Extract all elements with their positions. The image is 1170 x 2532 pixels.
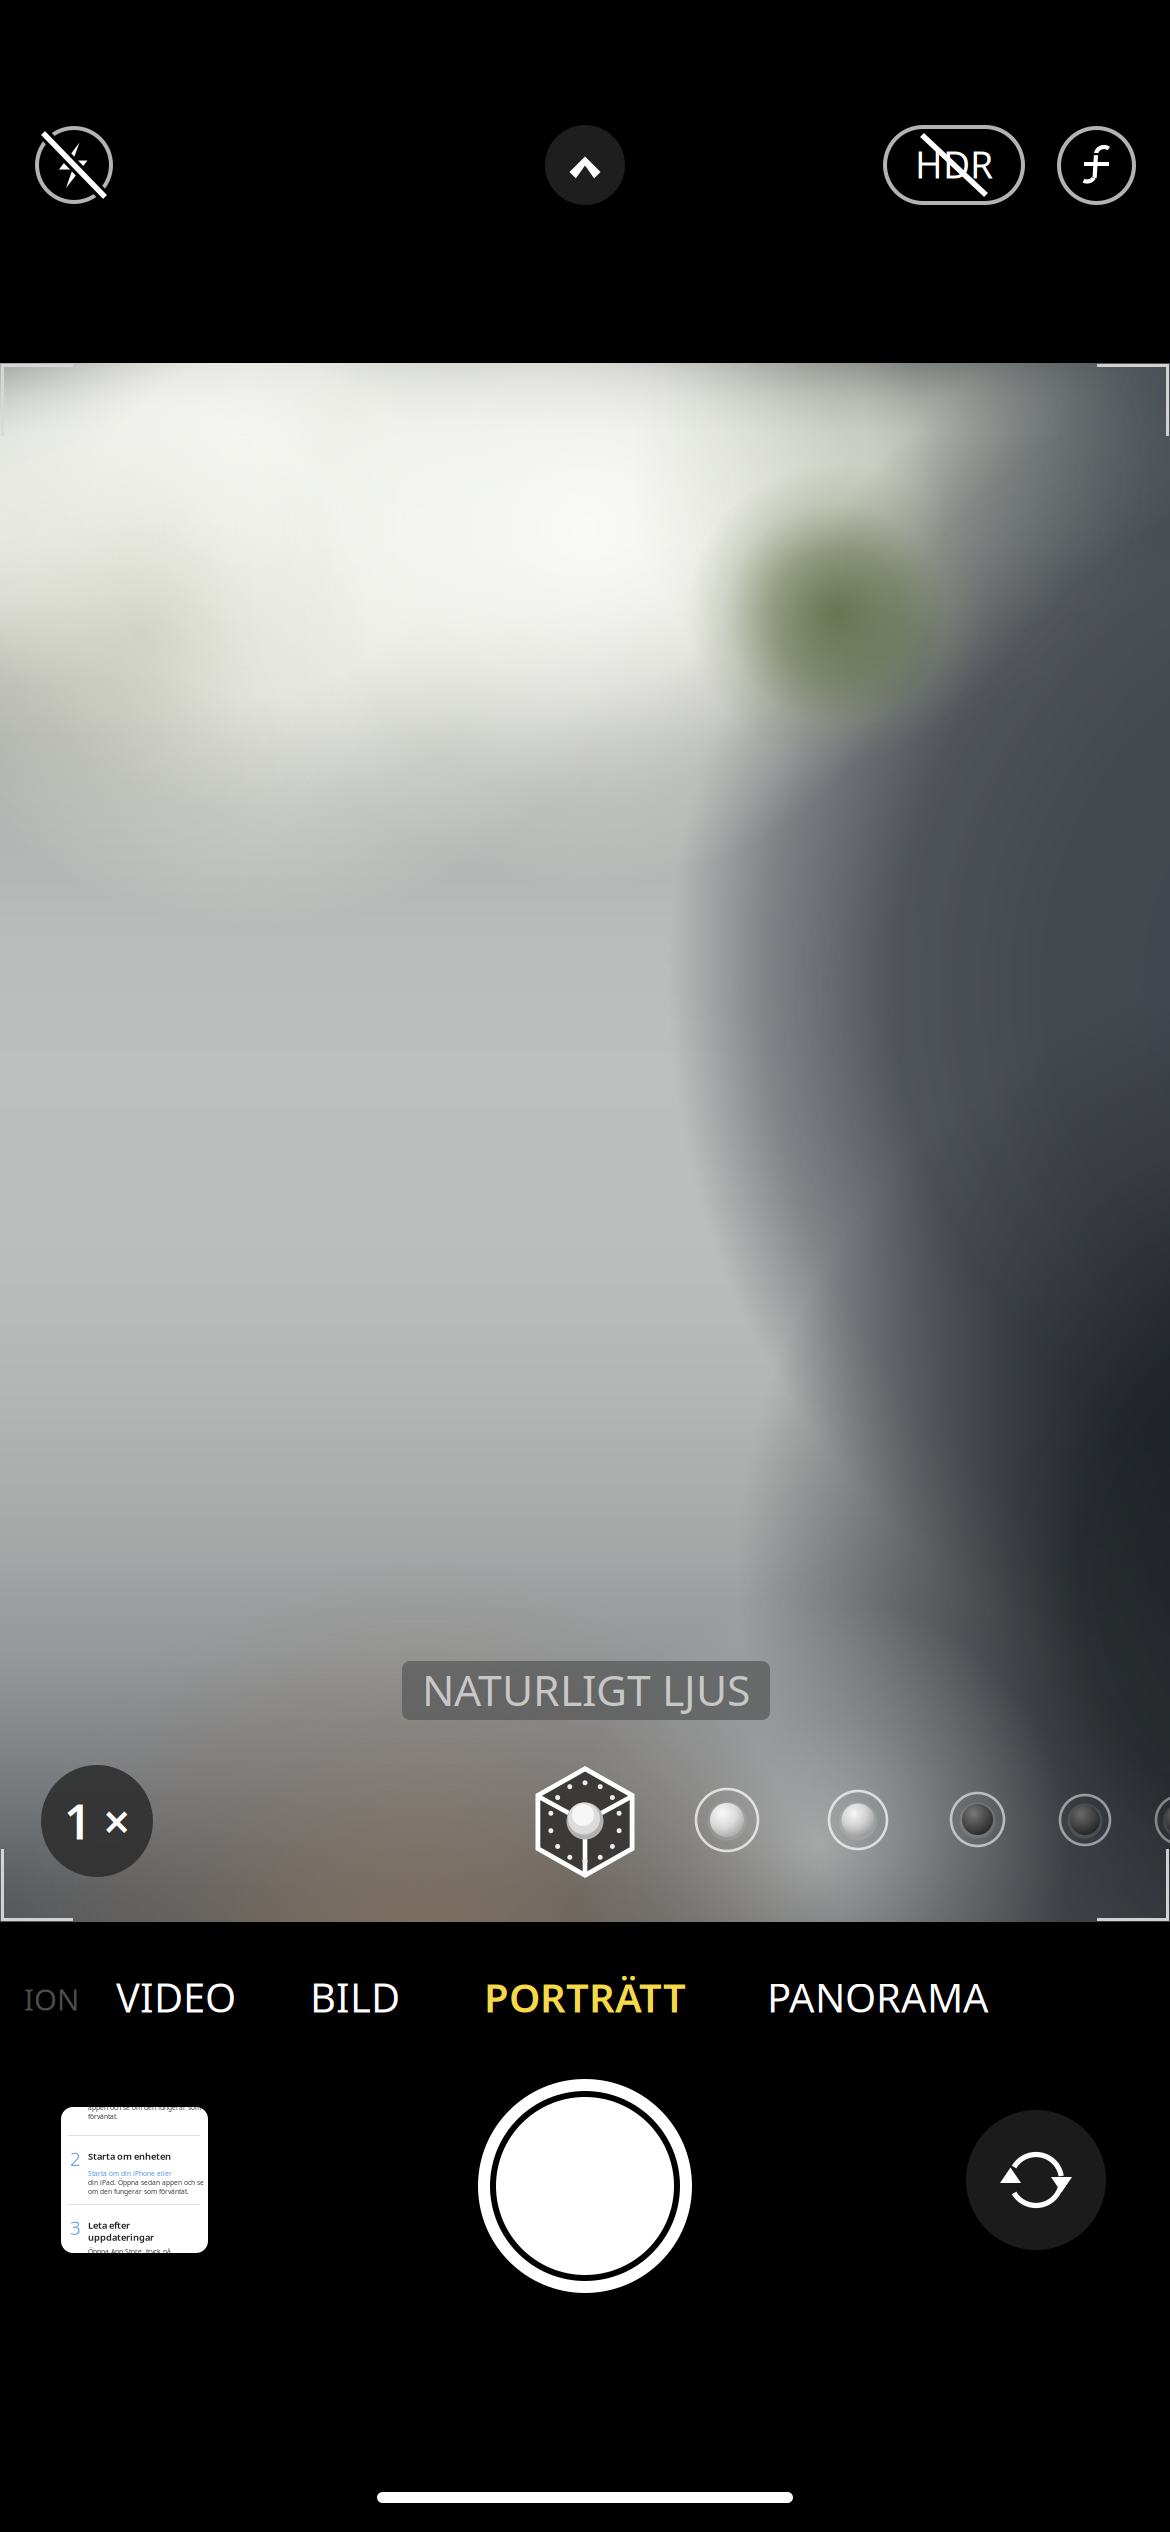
button[interactable]: Photo library [61, 2107, 208, 2253]
staticText: ION [24, 1979, 79, 2018]
button[interactable]: Flash off [24, 115, 124, 215]
staticText: 2 [70, 2146, 81, 2171]
button[interactable]: Take photo [478, 2079, 692, 2293]
button[interactable]: BILD [255, 1967, 455, 2027]
button[interactable]: Studio Light [692, 1785, 762, 1855]
staticText: uppdateringar [88, 2231, 154, 2243]
staticText: Öppna App Store, tryck på [88, 2247, 171, 2256]
button[interactable]: Contour Light [825, 1787, 891, 1853]
staticText: om den fungerar som förväntat. [88, 2187, 189, 2196]
button[interactable]: HDR off [885, 127, 1023, 203]
button[interactable]: Switch camera [966, 2110, 1106, 2250]
staticText: Leta efter [88, 2219, 130, 2231]
staticText: BILD [310, 1970, 400, 2023]
button[interactable]: Depth control [1059, 128, 1134, 203]
staticText: HDR [915, 139, 993, 189]
button[interactable]: PORTRÄTT [445, 1967, 725, 2027]
button[interactable]: Show camera controls [545, 125, 625, 205]
staticText: 3 [70, 2215, 81, 2240]
staticText: PORTRÄTT [484, 1970, 686, 2023]
staticText: NATURLIGT LJUS [422, 1661, 750, 1718]
staticText: VIDEO [116, 1970, 236, 2023]
staticText: Starta om din iPhone eller [88, 2169, 172, 2178]
staticText: Starta om enheten [88, 2150, 171, 2162]
staticText: 1 × [64, 1789, 130, 1853]
button[interactable]: Stage Light [947, 1789, 1008, 1850]
staticText: förväntat. [88, 2112, 118, 2121]
button[interactable]: PANORAMA [738, 1967, 1018, 2027]
staticText: appen och se om den fungerar som [88, 2103, 201, 2112]
staticText: PANORAMA [767, 1970, 989, 2023]
button[interactable]: 1 × [41, 1765, 153, 1877]
button[interactable]: Stage Light Mono [1056, 1791, 1114, 1849]
staticText: din iPad. Öppna sedan appen och se [88, 2178, 204, 2187]
button[interactable]: Natural Light [527, 1760, 643, 1884]
button[interactable]: VIDEO [76, 1967, 276, 2027]
button[interactable]: High-Key Light Mono [1152, 1792, 1170, 1848]
